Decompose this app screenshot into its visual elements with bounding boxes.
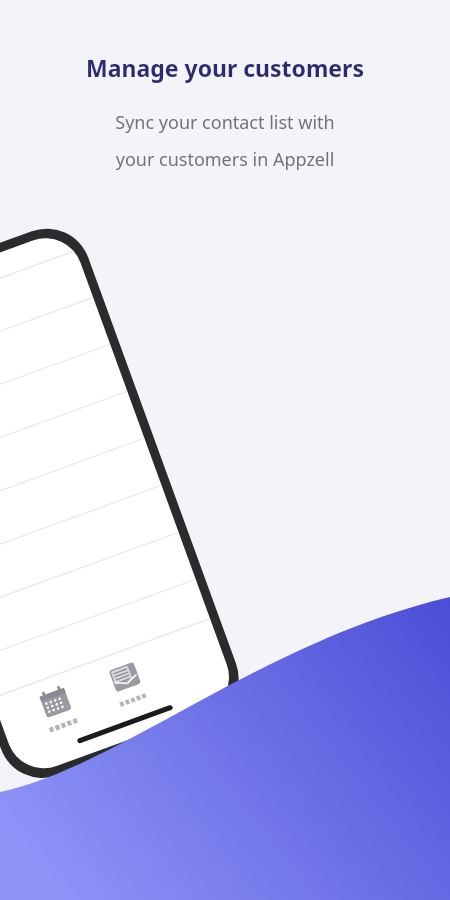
staticText: Manage your customers [24, 52, 426, 83]
button[interactable]: Calendar [12, 662, 86, 708]
staticText: Sync your contact list with your custome… [24, 110, 426, 171]
button[interactable]: Invoices [88, 636, 146, 682]
